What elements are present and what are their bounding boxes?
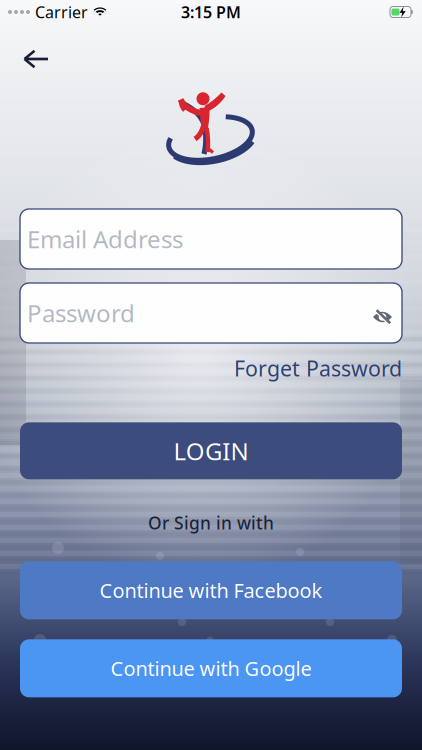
staticText: 3:15 PM [181, 1, 241, 23]
staticText: Or Sign in with [148, 511, 274, 534]
staticText: Carrier [35, 1, 88, 23]
staticText: Continue with Google [110, 655, 311, 682]
staticText: Continue with Facebook [99, 577, 322, 604]
staticText: Email Address [27, 223, 183, 255]
button[interactable]: Show password [373, 306, 392, 320]
button[interactable]: Back [0, 40, 49, 76]
button[interactable]: Continue with Google [20, 639, 402, 697]
button[interactable]: Forget Password [234, 354, 402, 382]
button[interactable]: LOGIN [20, 422, 402, 479]
button[interactable]: Continue with Facebook [20, 561, 402, 619]
staticText: Password [27, 297, 135, 329]
staticText: Forget Password [234, 354, 402, 382]
staticText: LOGIN [173, 435, 249, 467]
